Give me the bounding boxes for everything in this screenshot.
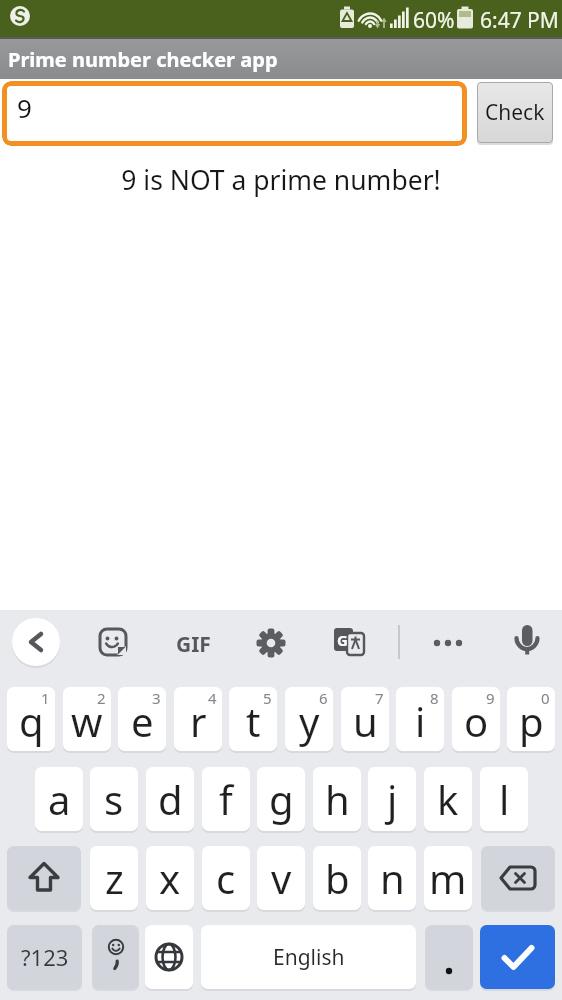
staticText: k <box>437 772 459 826</box>
staticText: u <box>353 694 378 748</box>
button[interactable] <box>7 846 81 910</box>
staticText: Check <box>485 98 545 127</box>
button[interactable]: ?123 <box>7 925 82 989</box>
button[interactable]: c <box>202 846 250 910</box>
staticText: z <box>105 851 124 905</box>
button[interactable]: o <box>452 687 500 751</box>
button[interactable]: x <box>146 846 194 910</box>
staticText: 60% <box>413 6 455 35</box>
button[interactable]: m <box>424 846 472 910</box>
button[interactable]: English <box>201 925 416 989</box>
staticText: n <box>380 851 405 905</box>
button[interactable]: q <box>7 687 55 751</box>
button[interactable] <box>425 925 473 989</box>
button[interactable]: f <box>202 767 250 831</box>
staticText: GIF <box>176 630 211 656</box>
staticText: l <box>499 772 510 826</box>
button[interactable] <box>430 630 466 656</box>
button[interactable] <box>481 846 555 910</box>
staticText: 9 is NOT a prime number! <box>121 162 441 198</box>
staticText: h <box>325 772 350 826</box>
button[interactable]: u <box>341 687 389 751</box>
staticText: 6 <box>319 688 328 708</box>
button[interactable]: h <box>313 767 361 831</box>
staticText: 0 <box>541 688 550 708</box>
staticText: 1 <box>41 688 50 708</box>
staticText: y <box>299 694 320 748</box>
staticText: i <box>415 694 426 748</box>
button[interactable]: l <box>480 767 528 831</box>
button[interactable]: i <box>396 687 444 751</box>
button[interactable]: Prime number checker app <box>0 39 562 79</box>
button[interactable]: e <box>118 687 166 751</box>
button[interactable]: w <box>63 687 111 751</box>
staticText: q <box>19 694 44 748</box>
staticText: c <box>216 851 236 905</box>
button[interactable] <box>511 624 543 668</box>
staticText: G <box>337 630 348 650</box>
staticText: v <box>271 851 292 905</box>
staticText: t <box>246 694 261 748</box>
staticText: 7 <box>375 688 384 708</box>
staticText: 8 <box>430 688 439 708</box>
staticText: ?123 <box>21 942 69 972</box>
staticText: 4 <box>208 688 217 708</box>
button[interactable]: y <box>285 687 333 751</box>
button[interactable]: r <box>174 687 222 751</box>
button[interactable] <box>97 627 129 659</box>
staticText: Prime number checker app <box>8 46 278 73</box>
staticText: p <box>519 694 544 748</box>
button[interactable] <box>12 618 60 666</box>
staticText: 9 <box>17 90 32 125</box>
staticText: o <box>464 694 489 748</box>
button[interactable]: t <box>229 687 277 751</box>
button[interactable]: p <box>507 687 555 751</box>
button[interactable] <box>255 627 287 659</box>
staticText: English <box>273 943 345 972</box>
button[interactable]: G <box>333 627 365 659</box>
staticText: b <box>325 851 350 905</box>
staticText: w <box>71 694 103 748</box>
staticText: r <box>190 694 207 748</box>
button[interactable]: a <box>35 767 83 831</box>
button[interactable]: z <box>90 846 138 910</box>
button[interactable]: k <box>424 767 472 831</box>
button[interactable] <box>145 925 193 989</box>
staticText: d <box>158 772 183 826</box>
button[interactable] <box>480 925 555 989</box>
button[interactable]: v <box>257 846 305 910</box>
button[interactable]: s <box>90 767 138 831</box>
staticText: a <box>48 772 71 826</box>
staticText: 6:47 PM <box>480 6 559 35</box>
button[interactable]: 9 <box>2 81 467 146</box>
staticText: j <box>387 772 398 826</box>
button[interactable]: Check <box>477 82 553 143</box>
staticText: s <box>104 772 124 826</box>
button[interactable]: j <box>368 767 416 831</box>
button[interactable]: b <box>313 846 361 910</box>
button[interactable]: d <box>146 767 194 831</box>
staticText: e <box>131 694 154 748</box>
staticText: 3 <box>152 688 161 708</box>
staticText: g <box>269 772 294 826</box>
button[interactable] <box>92 925 139 989</box>
button[interactable]: GIF <box>172 630 214 656</box>
staticText: 5 <box>263 688 272 708</box>
staticText: m <box>429 851 467 905</box>
staticText: f <box>219 772 233 826</box>
staticText: 9 <box>486 688 495 708</box>
staticText: 2 <box>97 688 106 708</box>
button[interactable]: n <box>368 846 416 910</box>
button[interactable]: g <box>257 767 305 831</box>
staticText: x <box>159 851 181 905</box>
